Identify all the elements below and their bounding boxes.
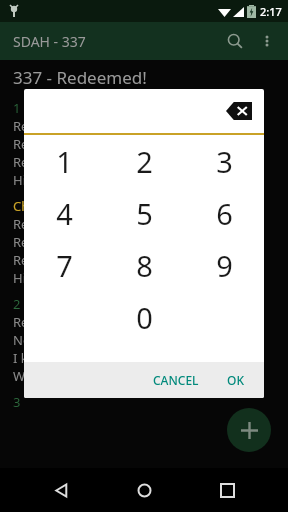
button[interactable]: CANCEL <box>145 366 207 394</box>
staticText: I know that the light of His presence <box>13 349 234 367</box>
staticText: 8 <box>136 246 153 285</box>
staticText: Redeemed by the blood of the Lamb; <box>13 233 239 251</box>
staticText: Redeemed through His infinite mercy, <box>13 153 245 171</box>
staticText: SDAH - 337 <box>13 32 86 51</box>
button[interactable]: 0 <box>104 291 184 343</box>
button[interactable]: Recent apps <box>205 468 249 512</box>
staticText: 3 <box>216 142 233 181</box>
staticText: 2 <box>136 142 153 181</box>
button[interactable]: 2 <box>104 135 184 187</box>
button[interactable]: Home <box>122 468 166 512</box>
button[interactable]: Backspace <box>224 100 254 122</box>
staticText: Redeemed, redeemed, <box>13 251 152 269</box>
button[interactable]: OK <box>219 366 252 394</box>
button[interactable]: More options <box>252 26 282 56</box>
staticText: OK <box>227 372 244 388</box>
staticText: 3 <box>13 393 21 411</box>
staticText: With me doth continually dwell. <box>13 367 206 385</box>
staticText: 2:17 <box>260 4 282 19</box>
staticText: 9 <box>216 246 233 285</box>
staticText: No language my rapture can tell; <box>13 331 214 349</box>
button[interactable]: 7 <box>24 239 104 291</box>
button[interactable]: Search <box>218 24 252 58</box>
staticText: Redeemed, redeemed, <box>13 215 152 233</box>
button[interactable]: 8 <box>104 239 184 291</box>
button[interactable]: Add <box>227 408 271 452</box>
button[interactable]: 1 <box>24 135 104 187</box>
staticText: 337 - Redeemed! <box>13 66 147 89</box>
staticText: Redeemed by the blood of the Lamb; <box>13 135 239 153</box>
staticText: Redeemed, and so happy in Jesus, <box>13 313 221 331</box>
button[interactable]: 5 <box>104 187 184 239</box>
staticText: CANCEL <box>153 372 199 388</box>
staticText: 4 <box>56 194 73 233</box>
staticText: 2 <box>13 295 21 313</box>
staticText: 5 <box>136 194 153 233</box>
button[interactable]: 4 <box>24 187 104 239</box>
button[interactable]: 6 <box>184 187 264 239</box>
staticText: Chorus <box>13 197 57 215</box>
button[interactable]: 3 <box>184 135 264 187</box>
button[interactable]: 9 <box>184 239 264 291</box>
staticText: His child, and forever, I am. <box>13 171 178 189</box>
staticText: 1 <box>56 142 73 181</box>
staticText: 1 <box>13 99 21 117</box>
staticText: 0 <box>136 298 153 337</box>
staticText: His child, and forever, I am. <box>13 269 178 287</box>
staticText: 6 <box>216 194 233 233</box>
button[interactable]: Back <box>39 468 83 512</box>
staticText: 7 <box>56 246 73 285</box>
staticText: Redeemed, how I love to proclaim it! <box>13 117 235 135</box>
